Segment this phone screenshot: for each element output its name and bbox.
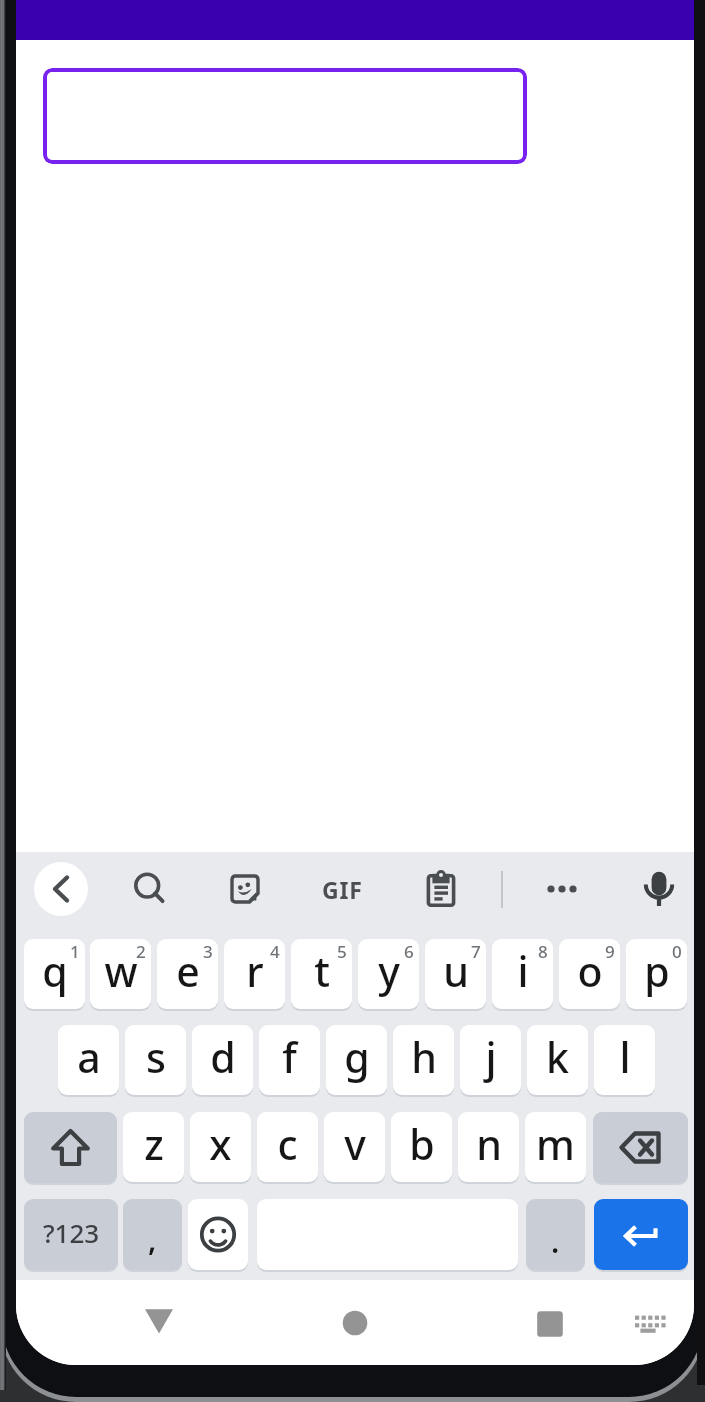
- staticText: z: [144, 1116, 164, 1172]
- button[interactable]: Stickers: [217, 861, 273, 917]
- button[interactable]: d: [192, 1025, 253, 1095]
- staticText: j: [485, 1029, 497, 1085]
- button[interactable]: Recent apps: [520, 1294, 580, 1354]
- button[interactable]: l: [594, 1025, 655, 1095]
- staticText: r: [246, 943, 264, 999]
- staticText: GIF: [322, 874, 363, 905]
- staticText: c: [277, 1116, 298, 1172]
- staticText: .: [551, 1221, 560, 1262]
- button[interactable]: w: [90, 939, 151, 1009]
- button[interactable]: Search: [122, 861, 178, 917]
- staticText: 4: [270, 940, 280, 963]
- staticText: p: [644, 943, 670, 999]
- staticText: x: [209, 1116, 232, 1172]
- button[interactable]: p: [626, 939, 687, 1009]
- button[interactable]: x: [190, 1112, 251, 1182]
- button[interactable]: GIF: [314, 861, 370, 917]
- button[interactable]: s: [125, 1025, 186, 1095]
- staticText: ,: [148, 1219, 157, 1260]
- button[interactable]: Clipboard: [413, 861, 469, 917]
- button[interactable]: r: [224, 939, 285, 1009]
- button[interactable]: Shift: [24, 1112, 117, 1183]
- staticText: g: [344, 1029, 370, 1085]
- button[interactable]: Voice input: [631, 861, 687, 917]
- staticText: m: [536, 1116, 575, 1172]
- staticText: b: [409, 1116, 435, 1172]
- staticText: d: [210, 1029, 236, 1085]
- button[interactable]: .: [526, 1199, 585, 1270]
- staticText: t: [314, 943, 330, 999]
- button[interactable]: g: [326, 1025, 387, 1095]
- staticText: q: [42, 943, 68, 999]
- staticText: 7: [471, 940, 481, 963]
- button[interactable]: Switch keyboard: [618, 1293, 678, 1353]
- staticText: v: [344, 1116, 366, 1172]
- staticText: 8: [538, 940, 548, 963]
- staticText: h: [411, 1029, 437, 1085]
- button[interactable]: m: [525, 1112, 586, 1182]
- staticText: 3: [203, 940, 213, 963]
- button[interactable]: Home: [325, 1293, 385, 1353]
- button[interactable]: t: [291, 939, 352, 1009]
- button[interactable]: e: [157, 939, 218, 1009]
- staticText: w: [104, 943, 138, 999]
- staticText: 5: [337, 940, 347, 963]
- button[interactable]: j: [460, 1025, 521, 1095]
- button[interactable]: f: [259, 1025, 320, 1095]
- button[interactable]: q: [24, 939, 85, 1009]
- button[interactable]: Message text field: [43, 68, 527, 164]
- button[interactable]: z: [123, 1112, 184, 1182]
- button[interactable]: h: [393, 1025, 454, 1095]
- staticText: i: [517, 943, 529, 999]
- staticText: s: [146, 1029, 166, 1085]
- staticText: u: [443, 943, 469, 999]
- staticText: 6: [404, 940, 414, 963]
- button[interactable]: y: [358, 939, 419, 1009]
- staticText: y: [378, 943, 400, 999]
- button[interactable]: n: [458, 1112, 519, 1182]
- button[interactable]: Backspace: [593, 1112, 688, 1183]
- staticText: f: [282, 1029, 297, 1085]
- button[interactable]: c: [257, 1112, 318, 1182]
- button[interactable]: ,: [123, 1199, 182, 1270]
- button[interactable]: ?123: [24, 1199, 118, 1270]
- button[interactable]: a: [58, 1025, 119, 1095]
- staticText: k: [546, 1029, 569, 1085]
- button[interactable]: Enter: [594, 1199, 688, 1270]
- button[interactable]: o: [559, 939, 620, 1009]
- button[interactable]: Emoji: [188, 1199, 248, 1270]
- staticText: 0: [672, 940, 682, 963]
- button[interactable]: v: [324, 1112, 385, 1182]
- button[interactable]: Back: [129, 1291, 189, 1351]
- staticText: n: [476, 1116, 502, 1172]
- staticText: l: [619, 1029, 631, 1085]
- button[interactable]: b: [391, 1112, 452, 1182]
- staticText: 2: [136, 940, 146, 963]
- staticText: 1: [70, 940, 80, 963]
- staticText: e: [176, 943, 200, 999]
- button[interactable]: k: [527, 1025, 588, 1095]
- button[interactable]: i: [492, 939, 553, 1009]
- staticText: 9: [605, 940, 615, 963]
- button[interactable]: u: [425, 939, 486, 1009]
- button[interactable]: Close keyboard toolbar: [34, 862, 88, 916]
- staticText: a: [77, 1029, 101, 1085]
- staticText: o: [577, 943, 603, 999]
- button[interactable]: More options: [534, 861, 590, 917]
- staticText: ?123: [43, 1215, 100, 1250]
